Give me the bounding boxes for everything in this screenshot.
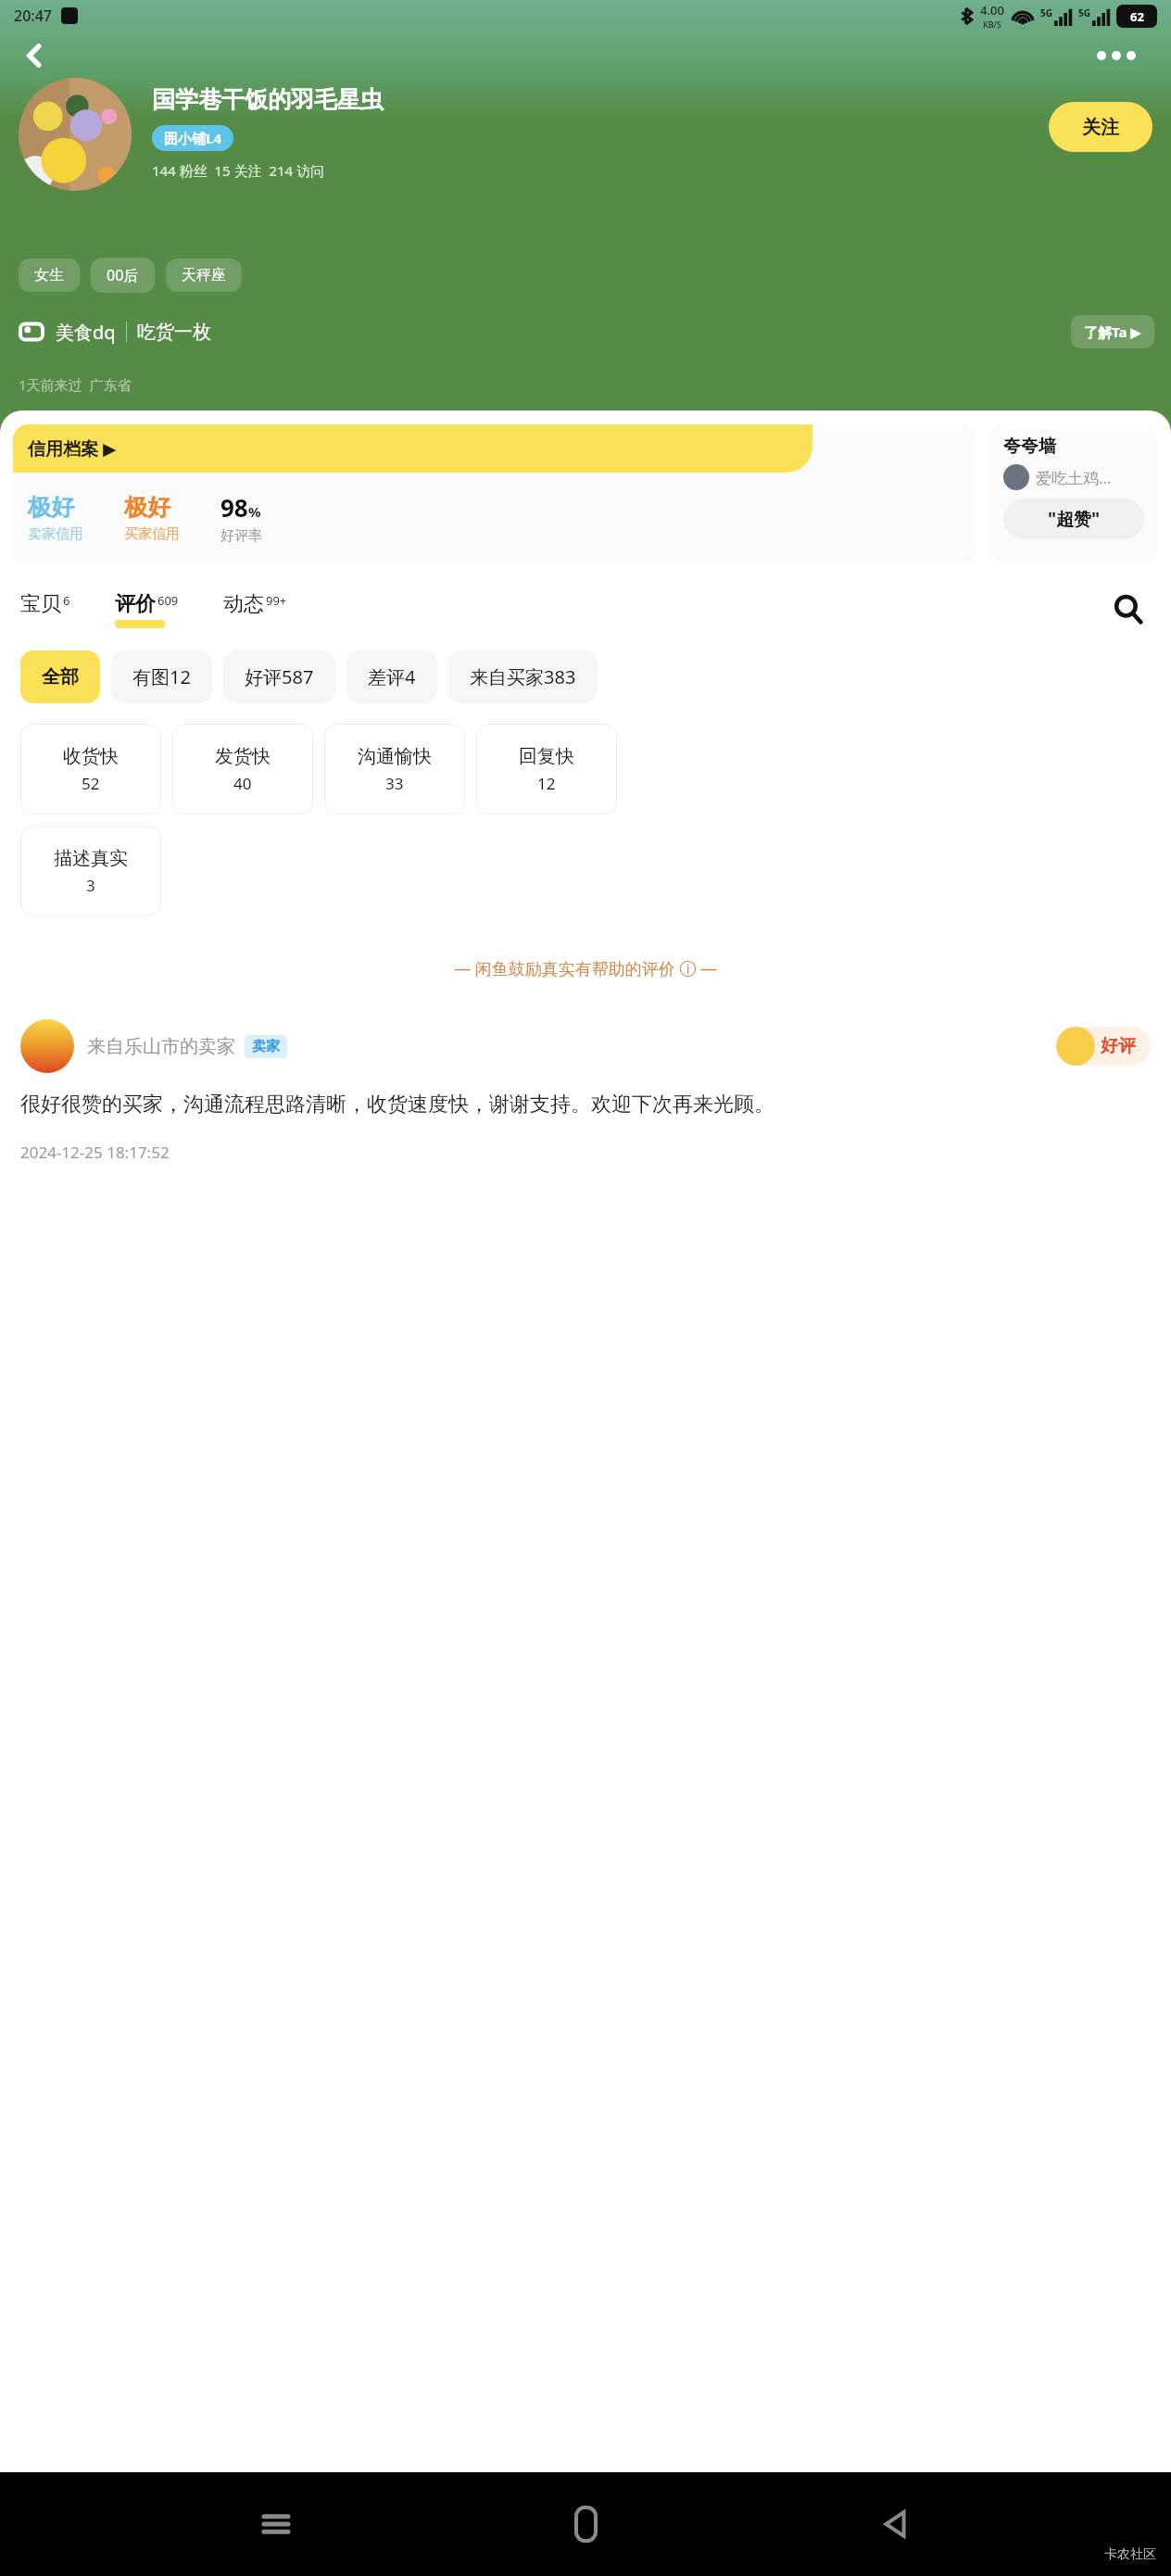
button[interactable]: 沟通愉快: [324, 724, 465, 814]
button[interactable]: "超赞": [1003, 499, 1144, 539]
staticText: 天秤座: [182, 266, 226, 284]
staticText: — 闲鱼鼓励真实有帮助的评价 ⓘ —: [454, 957, 718, 980]
staticText: 5G: [1078, 6, 1090, 19]
staticText: 609: [157, 592, 179, 609]
staticText: 评价: [115, 591, 156, 617]
staticText: 00后: [107, 265, 139, 285]
staticText: 动态: [223, 591, 264, 617]
staticText: 回复快: [519, 745, 574, 768]
button[interactable]: Home: [552, 2491, 619, 2557]
staticText: 3: [86, 875, 95, 896]
button[interactable]: 好评: [1056, 1027, 1151, 1066]
staticText: 40: [233, 773, 252, 794]
staticText: 收货快: [63, 745, 119, 768]
staticText: 女生: [34, 266, 64, 284]
button[interactable]: 动态: [223, 591, 287, 628]
staticText: 卖家: [252, 1038, 280, 1055]
staticText: 98: [220, 491, 248, 524]
staticText: 144 粉丝 15 关注 214 访问: [152, 161, 324, 180]
button[interactable]: 女生: [19, 259, 80, 292]
staticText: 2024-12-25 18:17:52: [20, 1142, 170, 1163]
staticText: 吃货一枚: [137, 321, 211, 344]
staticText: 关注: [1082, 116, 1119, 139]
staticText: 5G: [1040, 6, 1052, 19]
button[interactable]: 发货快: [172, 724, 313, 814]
button[interactable]: Search: [1106, 587, 1151, 632]
staticText: 卖家信用: [28, 525, 83, 543]
staticText: 12: [537, 773, 556, 794]
button[interactable]: 囲小铺L4: [152, 125, 233, 151]
staticText: 了解Ta ▶: [1084, 322, 1141, 341]
button[interactable]: 评价: [115, 591, 179, 628]
staticText: 差评4: [368, 664, 416, 689]
button[interactable]: 回复快: [476, 724, 617, 814]
staticText: 宝贝: [20, 591, 61, 617]
staticText: 囲小铺L4: [164, 129, 221, 147]
staticText: 信用档案 ▶: [28, 436, 117, 461]
staticText: 描述真实: [54, 847, 128, 870]
staticText: 好评: [1101, 1035, 1136, 1057]
staticText: 1天前来过 广东省: [19, 375, 132, 394]
staticText: 52: [82, 773, 100, 794]
staticText: 国学巷干饭的羽毛星虫: [152, 85, 384, 114]
staticText: %: [248, 502, 261, 521]
button[interactable]: 有图12: [111, 650, 212, 703]
staticText: 有图12: [132, 664, 191, 689]
staticText: 99+: [266, 592, 287, 609]
button[interactable]: 宝贝: [20, 591, 70, 628]
staticText: 20:47: [14, 6, 52, 26]
staticText: 33: [385, 773, 404, 794]
staticText: 爱吃土鸡...: [1036, 467, 1112, 488]
staticText: 卡农社区: [1104, 2546, 1156, 2563]
button[interactable]: Profile photo: [19, 78, 132, 191]
button[interactable]: Reviewer avatar: [20, 1019, 74, 1073]
staticText: 4.00: [980, 2, 1004, 19]
button[interactable]: 关注: [1049, 102, 1152, 152]
button[interactable]: Recent apps: [243, 2491, 309, 2557]
button[interactable]: 夸夸墙: [989, 424, 1158, 563]
staticText: 极好: [28, 493, 74, 522]
staticText: 很好很赞的买家，沟通流程思路清晰，收货速度快，谢谢支持。欢迎下次再来光顾。: [20, 1092, 1151, 1118]
button[interactable]: 描述真实: [20, 826, 161, 916]
button[interactable]: Back: [862, 2491, 928, 2557]
button[interactable]: More options: [1097, 36, 1152, 75]
staticText: 沟通愉快: [358, 745, 432, 768]
staticText: 6: [63, 592, 70, 609]
button[interactable]: 好评587: [223, 650, 335, 703]
staticText: 美食dq: [56, 320, 116, 345]
button[interactable]: 全部: [20, 650, 100, 703]
staticText: 来自乐山市的卖家: [87, 1035, 235, 1058]
staticText: 好评587: [245, 664, 314, 689]
staticText: 62: [1130, 8, 1144, 25]
staticText: 夸夸墙: [1003, 436, 1056, 458]
button[interactable]: 来自买家383: [448, 650, 598, 703]
button[interactable]: 收货快: [20, 724, 161, 814]
button[interactable]: 天秤座: [166, 259, 242, 292]
staticText: KB/S: [983, 19, 1001, 30]
staticText: 好评率: [220, 527, 262, 545]
button[interactable]: 00后: [91, 258, 155, 293]
staticText: 来自买家383: [470, 664, 576, 689]
button[interactable]: 了解Ta ▶: [1071, 315, 1154, 348]
staticText: 发货快: [215, 745, 271, 768]
staticText: "超赞": [1048, 507, 1101, 531]
staticText: 全部: [42, 665, 79, 688]
button[interactable]: 信用档案 ▶: [13, 424, 976, 563]
staticText: 买家信用: [124, 525, 180, 543]
button[interactable]: 差评4: [346, 650, 437, 703]
staticText: 极好: [124, 493, 170, 522]
button[interactable]: Back: [13, 34, 56, 77]
